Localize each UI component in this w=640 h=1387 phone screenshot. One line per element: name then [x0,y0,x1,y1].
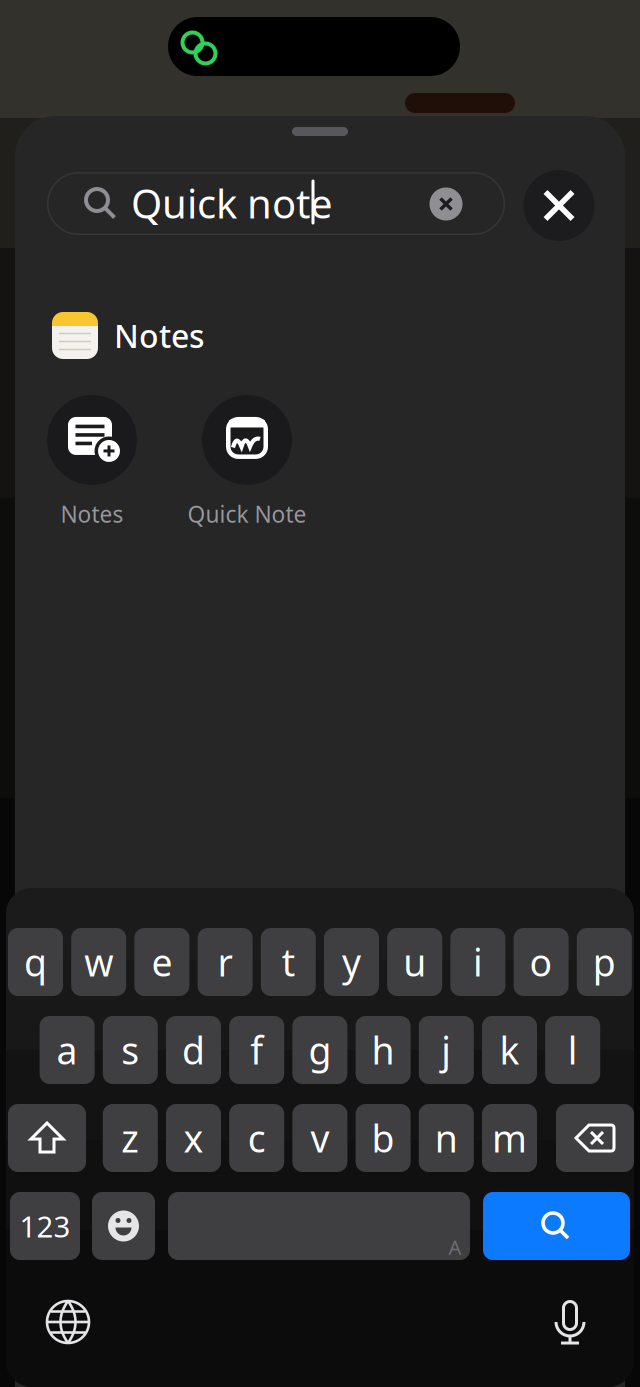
button[interactable]: Search [47,172,505,235]
staticText: l [568,1025,578,1075]
button[interactable]: Notes [27,400,157,524]
button[interactable]: Space [168,1192,470,1260]
staticText: y [342,937,361,987]
staticText: Quick note [131,176,333,229]
button[interactable]: q [8,928,63,996]
staticText: z [121,1113,139,1163]
staticText: k [499,1025,519,1075]
staticText: g [308,1025,331,1075]
button[interactable]: i [450,928,505,996]
button[interactable]: x [166,1104,221,1172]
staticText: b [372,1113,395,1163]
button[interactable]: g [292,1016,347,1084]
button[interactable]: Delete [556,1104,634,1172]
staticText: v [310,1113,329,1163]
staticText: i [473,937,483,987]
button[interactable]: Quick Note [182,400,312,524]
staticText: Notes [60,499,123,529]
staticText: x [183,1113,203,1163]
button[interactable]: c [229,1104,284,1172]
button[interactable]: Emoji [92,1192,155,1260]
button[interactable]: k [482,1016,537,1084]
button[interactable]: p [577,928,632,996]
button[interactable]: a [40,1016,95,1084]
staticText: w [84,937,113,987]
button[interactable]: u [387,928,442,996]
button[interactable]: Shift [8,1104,86,1172]
button[interactable]: r [198,928,253,996]
button[interactable]: f [229,1016,284,1084]
staticText: Notes [114,314,205,357]
button[interactable]: y [324,928,379,996]
staticText: A [448,1234,461,1260]
button[interactable]: Notes [52,305,610,365]
button[interactable]: v [292,1104,347,1172]
staticText: o [530,937,553,987]
button[interactable]: Close [523,170,594,241]
staticText: r [218,937,233,987]
staticText: s [121,1025,139,1075]
button[interactable]: m [482,1104,537,1172]
staticText: p [593,937,616,987]
staticText: m [492,1113,527,1163]
button[interactable]: l [545,1016,600,1084]
staticText: u [403,937,426,987]
button[interactable]: w [71,928,126,996]
button[interactable]: h [356,1016,411,1084]
button[interactable]: n [419,1104,474,1172]
staticText: j [441,1025,451,1075]
staticText: t [282,937,295,987]
staticText: c [248,1113,266,1163]
staticText: a [57,1025,78,1075]
button[interactable]: Clear text [429,187,462,220]
staticText: d [182,1025,205,1075]
button[interactable]: Dictation [546,1298,594,1346]
button[interactable]: o [514,928,569,996]
button[interactable]: s [103,1016,158,1084]
staticText: h [372,1025,395,1075]
button[interactable]: 123 [10,1192,80,1260]
staticText: 123 [19,1206,70,1245]
button[interactable]: e [134,928,189,996]
button[interactable]: t [261,928,316,996]
staticText: f [250,1025,263,1075]
button[interactable]: Next keyboard [44,1298,92,1346]
button[interactable]: b [356,1104,411,1172]
button[interactable]: z [103,1104,158,1172]
staticText: n [435,1113,458,1163]
staticText: q [24,937,47,987]
button[interactable]: d [166,1016,221,1084]
button[interactable]: j [419,1016,474,1084]
button[interactable]: Personal Hotspot [168,17,460,76]
button[interactable]: Search [483,1192,630,1260]
staticText: e [151,937,172,987]
staticText: Quick Note [187,499,306,529]
